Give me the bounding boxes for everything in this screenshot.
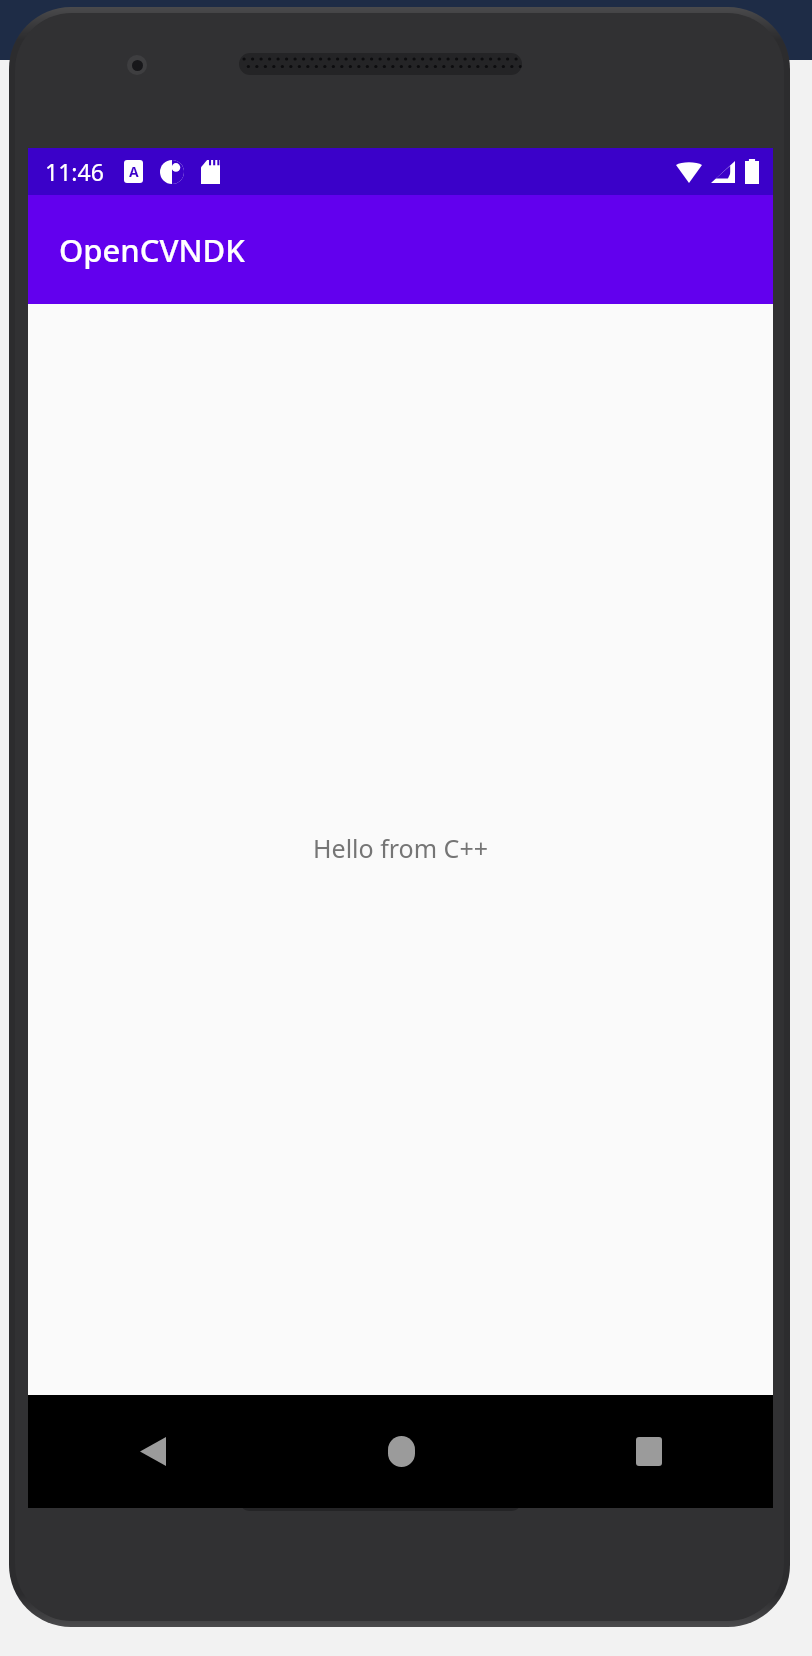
button[interactable]: Home (277, 1395, 525, 1508)
button[interactable]: Back (28, 1395, 277, 1508)
staticText: OpenCVNDK (59, 229, 245, 271)
staticText: Hello from C++ (313, 831, 488, 865)
button[interactable]: Recent apps (525, 1395, 773, 1508)
staticText: A (129, 162, 139, 181)
staticText: 11:46 (45, 156, 104, 187)
